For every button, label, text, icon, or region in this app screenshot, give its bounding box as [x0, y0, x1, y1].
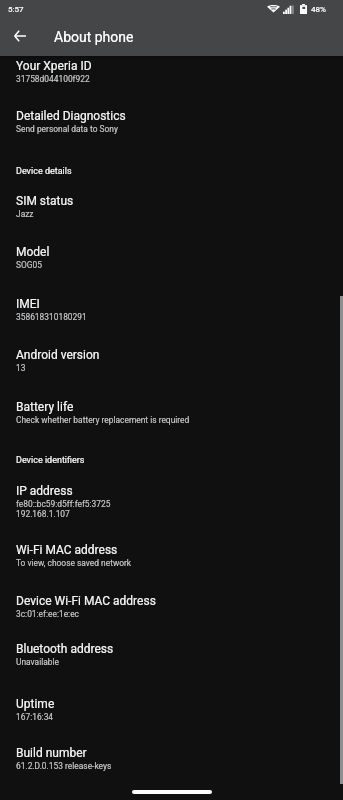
staticText: 3c:01:ef:ee:1e:ec [16, 609, 79, 619]
button[interactable]: Bluetooth address [0, 634, 343, 670]
staticText: 48% [311, 5, 326, 14]
staticText: Uptime [16, 697, 55, 711]
button[interactable]: Android version [0, 340, 343, 376]
button[interactable]: SIM status [0, 186, 343, 222]
staticText: SIM status [16, 194, 74, 208]
staticText: Device identifiers [16, 455, 85, 466]
staticText: 13 [16, 363, 26, 373]
staticText: Send personal data to Sony [16, 124, 118, 134]
button[interactable]: Wi-Fi MAC address [0, 535, 343, 571]
button[interactable]: IP address [0, 476, 343, 522]
button[interactable]: Detailed Diagnostics [0, 101, 343, 137]
staticText: IMEI [16, 297, 40, 311]
staticText: 192.168.1.107 [16, 509, 70, 519]
button[interactable]: Device Wi-Fi MAC address [0, 586, 343, 622]
button[interactable]: Back [3, 22, 37, 56]
staticText: Detailed Diagnostics [16, 109, 126, 123]
staticText: 5:57 [8, 5, 24, 14]
staticText: Unavailable [16, 657, 59, 667]
staticText: Wi-Fi MAC address [16, 543, 118, 557]
staticText: To view, choose saved network [16, 558, 132, 568]
staticText: Battery life [16, 400, 74, 414]
staticText: Jazz [16, 209, 34, 219]
staticText: Bluetooth address [16, 642, 114, 656]
staticText: About phone [54, 29, 134, 45]
staticText: 61.2.D.0.153 release-keys [16, 761, 112, 771]
button[interactable]: Battery life [0, 392, 343, 428]
staticText: 167:16:34 [16, 712, 54, 722]
staticText: Your Xperia ID [16, 59, 92, 73]
staticText: 31758d044100f922 [16, 74, 90, 84]
staticText: Build number [16, 746, 87, 760]
button[interactable]: Build number [0, 738, 343, 774]
button[interactable]: Your Xperia ID [0, 51, 343, 87]
staticText: Android version [16, 348, 100, 362]
staticText: Check whether battery replacement is req… [16, 415, 190, 425]
staticText: IP address [16, 484, 73, 498]
staticText: Model [16, 245, 50, 259]
button[interactable]: IMEI [0, 289, 343, 325]
staticText: SOG05 [16, 260, 42, 270]
staticText: 358618310180291 [16, 312, 87, 322]
staticText: Device details [16, 166, 72, 177]
button[interactable]: Uptime [0, 689, 343, 725]
staticText: Device Wi-Fi MAC address [16, 594, 156, 608]
button[interactable]: Model [0, 237, 343, 273]
staticText: fe80::bc59:d5ff:fef5:3725 [16, 499, 111, 509]
